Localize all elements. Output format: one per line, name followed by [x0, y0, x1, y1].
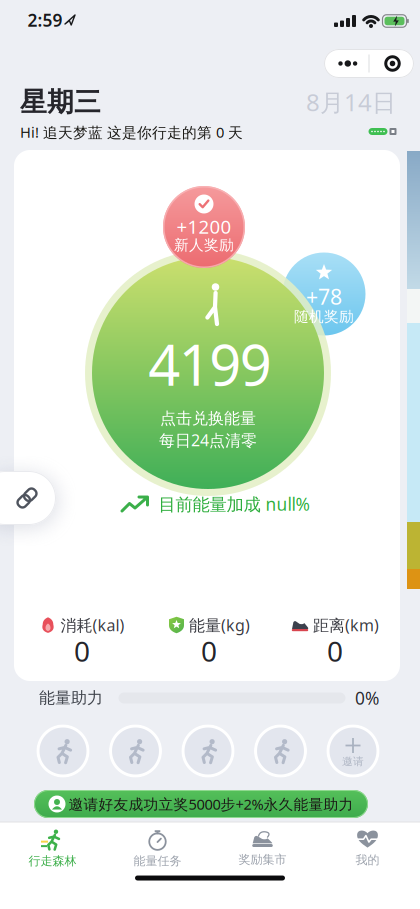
staticText: 0: [201, 632, 217, 670]
button[interactable]: Close: [382, 53, 402, 73]
staticText: 行走森林: [28, 854, 76, 868]
staticText: +1200: [176, 214, 231, 239]
staticText: 邀请好友成功立奖5000步+2%永久能量助力: [68, 794, 353, 814]
staticText: +78: [306, 282, 342, 311]
staticText: 8月14日: [306, 86, 396, 118]
staticText: 能量任务: [133, 854, 181, 868]
staticText: 距离(km): [313, 614, 379, 636]
staticText: 0: [74, 632, 90, 670]
button[interactable]: 新人奖励 +1200: [163, 186, 245, 268]
staticText: 4199: [148, 327, 272, 401]
button[interactable]: 点击兑换能量: [85, 250, 331, 496]
staticText: 点击兑换能量: [160, 409, 256, 428]
button[interactable]: More: [335, 53, 360, 73]
button[interactable]: 邀请好友: [34, 790, 368, 818]
button[interactable]: 能量任务: [112, 824, 202, 872]
staticText: 2:59: [27, 8, 62, 31]
button[interactable]: 奖励集市: [217, 824, 307, 872]
staticText: 新人奖励: [174, 236, 234, 254]
staticText: 目前能量加成 null%: [158, 492, 309, 515]
staticText: Hi! 追天梦蓝 这是你行走的第 0 天: [20, 122, 243, 142]
button[interactable]: 邀请: [326, 724, 379, 777]
button[interactable]: 链接: [0, 471, 56, 525]
staticText: 星期三: [20, 86, 101, 118]
staticText: 能量(kg): [189, 614, 250, 636]
staticText: 能量助力: [39, 688, 103, 708]
staticText: 消耗(kal): [60, 614, 124, 636]
button[interactable]: 邀请好友: [254, 724, 307, 777]
button[interactable]: 行走森林: [7, 824, 97, 872]
staticText: 每日24点清零: [159, 429, 257, 451]
button[interactable]: 邀请好友: [109, 724, 162, 777]
staticText: 随机奖励: [294, 307, 354, 325]
staticText: 奖励集市: [238, 852, 286, 867]
staticText: 我的: [355, 853, 379, 867]
button[interactable]: 随机奖励 +78: [282, 252, 365, 335]
button[interactable]: 我的: [322, 824, 412, 872]
button[interactable]: 邀请好友: [36, 724, 89, 777]
button[interactable]: 邀请好友: [181, 724, 234, 777]
staticText: 0%: [355, 686, 379, 709]
staticText: 邀请: [342, 755, 364, 768]
staticText: 0: [327, 632, 343, 670]
